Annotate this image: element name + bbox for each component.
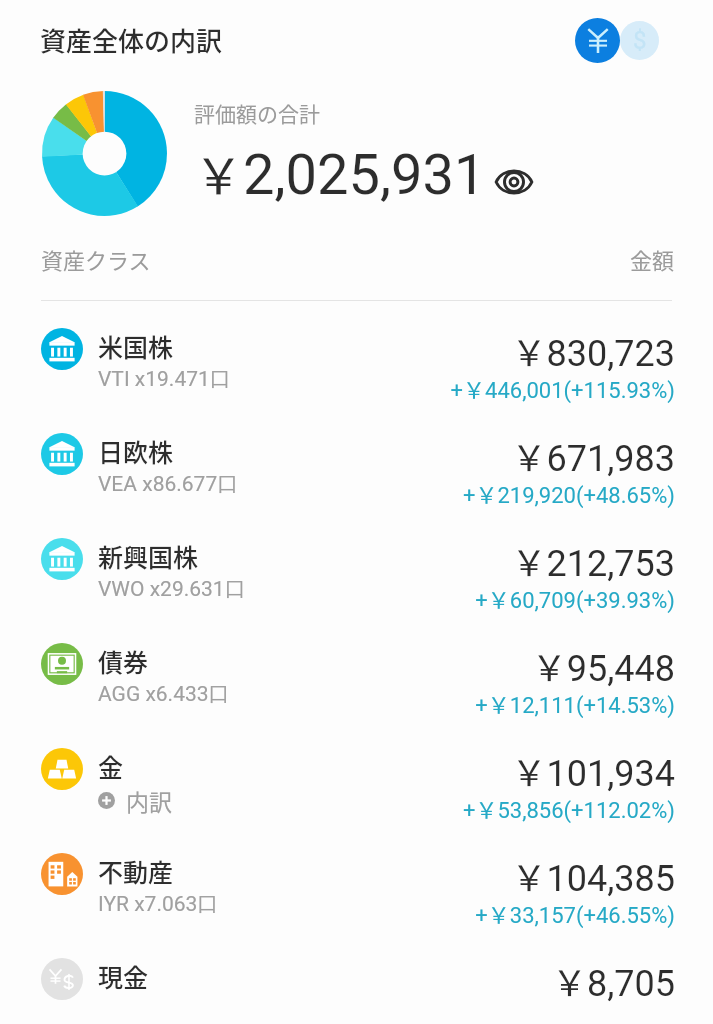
staticText: ￥8,705 — [551, 955, 675, 1006]
staticText: 米国株 — [98, 328, 174, 364]
staticText: 評価額の合計 — [194, 98, 320, 128]
staticText: VWO x29.631口 — [98, 576, 246, 602]
staticText: 新興国株 — [98, 538, 199, 574]
staticText: 資産クラス — [41, 243, 151, 275]
staticText: +￥53,856(+112.02%) — [462, 792, 675, 824]
staticText: VEA x86.677口 — [98, 471, 239, 497]
staticText: ￥104,385 — [511, 850, 675, 901]
staticText: 金 — [98, 748, 124, 784]
staticText: ￥2,025,931 — [194, 137, 486, 208]
staticText: ￥95,448 — [531, 640, 675, 691]
staticText: AGG x6.433口 — [98, 681, 230, 707]
staticText: +￥60,709(+39.93%) — [475, 582, 675, 614]
button[interactable]: 金 — [0, 722, 713, 827]
button[interactable]: 米国株 — [0, 302, 713, 407]
staticText: +￥12,111(+14.53%) — [475, 687, 675, 719]
staticText: ￥671,983 — [511, 430, 675, 481]
staticText: IYR x7.063口 — [98, 891, 219, 917]
button[interactable]: Show in US dollars — [620, 21, 659, 60]
staticText: VTI x19.471口 — [98, 366, 231, 392]
staticText: 現金 — [98, 958, 149, 994]
staticText: 債券 — [98, 643, 149, 679]
button[interactable]: 債券 — [0, 617, 713, 722]
staticText: ￥101,934 — [511, 745, 675, 796]
staticText: $ — [633, 27, 647, 55]
button[interactable]: 日欧株 — [0, 407, 713, 512]
button[interactable]: 新興国株 — [0, 512, 713, 617]
staticText: +￥219,920(+48.65%) — [462, 477, 675, 509]
staticText: 金額 — [630, 243, 675, 275]
staticText: 日欧株 — [98, 433, 174, 469]
staticText: +￥33,157(+46.55%) — [475, 897, 675, 929]
button[interactable]: 不動産 — [0, 827, 713, 932]
staticText: 内訳 — [126, 784, 172, 817]
staticText: +￥446,001(+115.93%) — [450, 372, 675, 404]
staticText: 資産全体の内訳 — [40, 21, 223, 59]
button[interactable]: Show in Japanese yen — [575, 18, 620, 63]
staticText: ￥830,723 — [511, 325, 675, 376]
button[interactable]: 現金 — [0, 932, 713, 1024]
button[interactable]: Toggle balance visibility — [495, 168, 533, 196]
staticText: 不動産 — [98, 853, 174, 889]
staticText: ￥212,753 — [511, 535, 675, 586]
